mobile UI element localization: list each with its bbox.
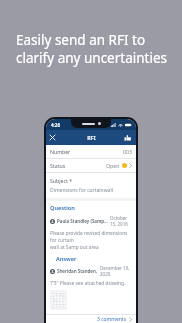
staticText: 7'5" Please see attached drawing. [50,280,126,287]
staticText: Question [50,204,75,212]
staticText: RFI [87,134,96,141]
staticText: December 10, 2020 [100,265,132,277]
button[interactable]: Number [46,145,136,158]
button[interactable]: 3 comments [46,315,136,323]
staticText: 003 [123,148,132,155]
staticText: 3 comments [97,316,127,323]
staticText: Status [50,162,66,169]
button[interactable]: Close [46,131,59,144]
staticText: Answer [56,255,77,263]
staticText: Sheridan Standen, [57,268,98,274]
staticText: October 15, 2016 [110,215,132,227]
staticText: Easily send an RFI to [16,31,146,49]
staticText: Dimensions for curtainwall [50,187,113,194]
staticText: clarify any uncertainties [16,49,168,67]
button[interactable]: Attached drawing [50,290,67,310]
button[interactable]: Subject * [46,173,136,198]
staticText: Open [106,162,120,169]
button[interactable]: Status [46,159,136,172]
button[interactable]: Approve [122,132,133,143]
staticText: 4:26 [51,122,60,128]
staticText: Paula Standley (Samp… [57,218,108,224]
staticText: Please provide revised dimensions for cu… [50,230,132,251]
staticText: Subject * [50,177,73,184]
staticText: Number [50,148,71,155]
